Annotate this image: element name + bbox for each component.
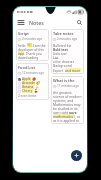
staticText: List: [53, 55, 59, 59]
staticText: 🍒: [34, 89, 38, 93]
button[interactable]: Food List: [16, 63, 49, 100]
staticText: Avocado: [22, 81, 35, 85]
button[interactable]: What is the real…: [51, 76, 84, 124]
staticText: Bulleted list: [53, 43, 72, 47]
staticText: pure: [69, 110, 77, 114]
button[interactable]: Open navigation menu: [16, 17, 26, 27]
staticText: 👋: [27, 43, 32, 47]
staticText: as it is applied to …: [53, 118, 82, 122]
staticText: Take notes with…: [53, 31, 82, 36]
staticText: Script: [18, 31, 29, 36]
staticText: 2 even items: [18, 94, 37, 98]
staticText: 2 minutes ago: [57, 37, 78, 41]
button[interactable]: Cherry: [18, 89, 47, 93]
staticText: . Thank you for: [24, 51, 47, 55]
staticText: app: [18, 51, 24, 55]
button[interactable]: Search notes: [74, 17, 84, 27]
staticText: 🥑: [36, 81, 40, 85]
staticText: Apple: [22, 77, 31, 81]
staticText: Export: [53, 68, 65, 72]
staticText: systems, and space: [53, 98, 82, 102]
staticText: 11 minutes ago: [57, 84, 79, 88]
staticText: be studied in its: [53, 106, 78, 110]
staticText: color chooser: [53, 59, 75, 63]
staticText: Cherry: [22, 89, 33, 93]
staticText: downloading: [18, 55, 39, 59]
staticText: 🍌: [35, 85, 39, 89]
staticText: Bold text: [53, 47, 68, 51]
staticText: ), or: [74, 114, 81, 118]
button[interactable]: Create new note: [71, 150, 82, 161]
staticText: Background: [53, 63, 72, 67]
staticText: and more: [65, 68, 81, 72]
staticText: Banana: [22, 85, 34, 89]
staticText: hello: [18, 43, 27, 47]
staticText: 🍎: [32, 77, 36, 81]
staticText: science of modern: [53, 94, 82, 98]
staticText: developer of this: [18, 47, 44, 51]
staticText: mathematics: [53, 114, 74, 118]
staticText: Italic text: [53, 51, 67, 55]
button[interactable]: Script: [16, 29, 49, 61]
staticText: Mathematics may: [53, 102, 81, 106]
button[interactable]: Apple: [18, 77, 47, 81]
staticText: the greatest: [53, 90, 72, 94]
staticText: own right: [53, 110, 69, 114]
button[interactable]: Banana: [18, 85, 47, 89]
staticText: Notes: [29, 19, 44, 26]
button[interactable]: Take notes with…: [51, 29, 84, 74]
staticText: Food List: [18, 65, 36, 70]
staticText: I am the: [32, 43, 46, 47]
staticText: 2 minutes ago: [22, 37, 43, 41]
staticText: What is the real…: [53, 78, 82, 83]
button[interactable]: Avocado: [18, 81, 47, 85]
staticText: 12 minutes ago: [22, 71, 44, 75]
